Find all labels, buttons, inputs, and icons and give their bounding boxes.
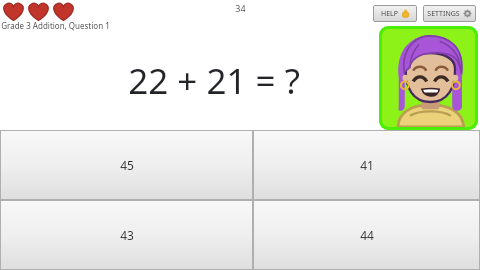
button[interactable]: 43 — [0, 200, 253, 270]
staticText: 41 — [360, 157, 374, 173]
staticText: Grade 3 Addition, Question 1 — [1, 20, 110, 31]
button[interactable]: 41 — [253, 130, 480, 200]
button[interactable]: Help — [373, 5, 417, 22]
button[interactable]: 44 — [253, 200, 480, 270]
staticText: 43 — [120, 227, 134, 243]
button[interactable]: 45 — [0, 130, 253, 200]
staticText: 22 + 21 = ? — [128, 57, 300, 105]
staticText: 34 — [235, 2, 246, 14]
button[interactable]: Settings — [423, 5, 476, 22]
staticText: 44 — [360, 227, 374, 243]
other: Lives remaining: 3 — [1, 1, 76, 22]
staticText: SETTINGS — [427, 9, 460, 19]
staticText: HELP — [381, 9, 398, 19]
staticText: 45 — [120, 157, 134, 173]
button[interactable]: Player avatar — [382, 29, 475, 127]
